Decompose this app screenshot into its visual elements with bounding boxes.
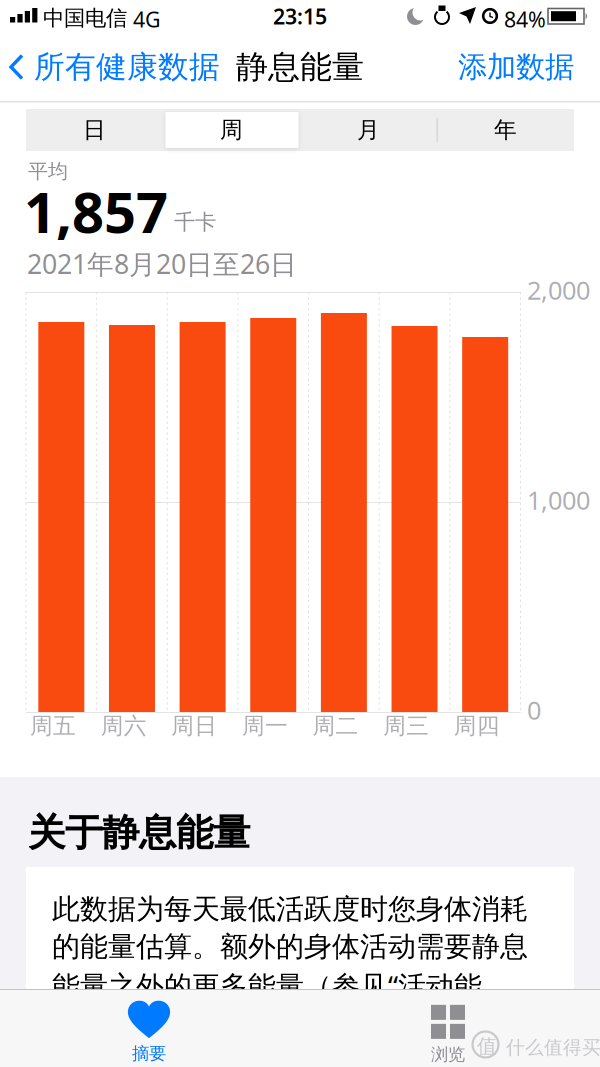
staticText: 所有健康数据 bbox=[34, 48, 220, 86]
staticText: 千卡 bbox=[174, 209, 216, 235]
staticText: 日 bbox=[83, 116, 106, 144]
staticText: 0 bbox=[527, 693, 541, 727]
staticText: 周三 bbox=[383, 712, 429, 740]
button[interactable]: 浏览 bbox=[378, 1001, 518, 1067]
button[interactable]: 添加数据 bbox=[458, 32, 574, 102]
staticText: 周日 bbox=[171, 712, 217, 740]
button[interactable]: 月 bbox=[300, 109, 437, 151]
staticText: 能量之外的更多能量（参见“活动能 bbox=[52, 967, 482, 1004]
staticText: 浏览 bbox=[431, 1044, 465, 1065]
staticText: 84% bbox=[504, 5, 546, 33]
button[interactable]: 所有健康数据 bbox=[9, 32, 220, 102]
staticText: 年 bbox=[494, 116, 517, 144]
staticText: 2021年8月20日至26日 bbox=[27, 246, 297, 281]
staticText: 月 bbox=[357, 116, 380, 144]
staticText: 1,857 bbox=[24, 174, 168, 248]
staticText: 平均 bbox=[28, 159, 68, 184]
button[interactable]: 摘要 bbox=[79, 998, 219, 1066]
staticText: 周二 bbox=[313, 712, 359, 740]
button[interactable]: 周 bbox=[163, 109, 300, 151]
staticText: 静息能量 bbox=[236, 47, 364, 87]
staticText: 什么值得买 bbox=[506, 1036, 600, 1059]
staticText: 添加数据 bbox=[458, 49, 574, 85]
staticText: 此数据为每天最低活跃度时您身体消耗 bbox=[52, 892, 528, 926]
staticText: 2,000 bbox=[527, 273, 590, 307]
staticText: 的能量估算。额外的身体活动需要静息 bbox=[52, 929, 528, 964]
staticText: 4G bbox=[133, 5, 161, 33]
staticText: 周 bbox=[220, 116, 243, 144]
staticText: 中国电信 bbox=[43, 5, 127, 31]
staticText: 值 bbox=[477, 1034, 497, 1059]
staticText: 周六 bbox=[101, 712, 147, 740]
staticText: 关于静息能量 bbox=[28, 810, 250, 856]
button[interactable]: 年 bbox=[437, 109, 574, 151]
staticText: 周一 bbox=[242, 712, 288, 740]
staticText: 周五 bbox=[30, 712, 76, 740]
staticText: 周四 bbox=[454, 712, 500, 740]
staticText: 1,000 bbox=[527, 483, 590, 517]
staticText: 23:15 bbox=[273, 2, 327, 30]
staticText: 摘要 bbox=[132, 1043, 166, 1064]
button[interactable]: 日 bbox=[26, 109, 163, 151]
